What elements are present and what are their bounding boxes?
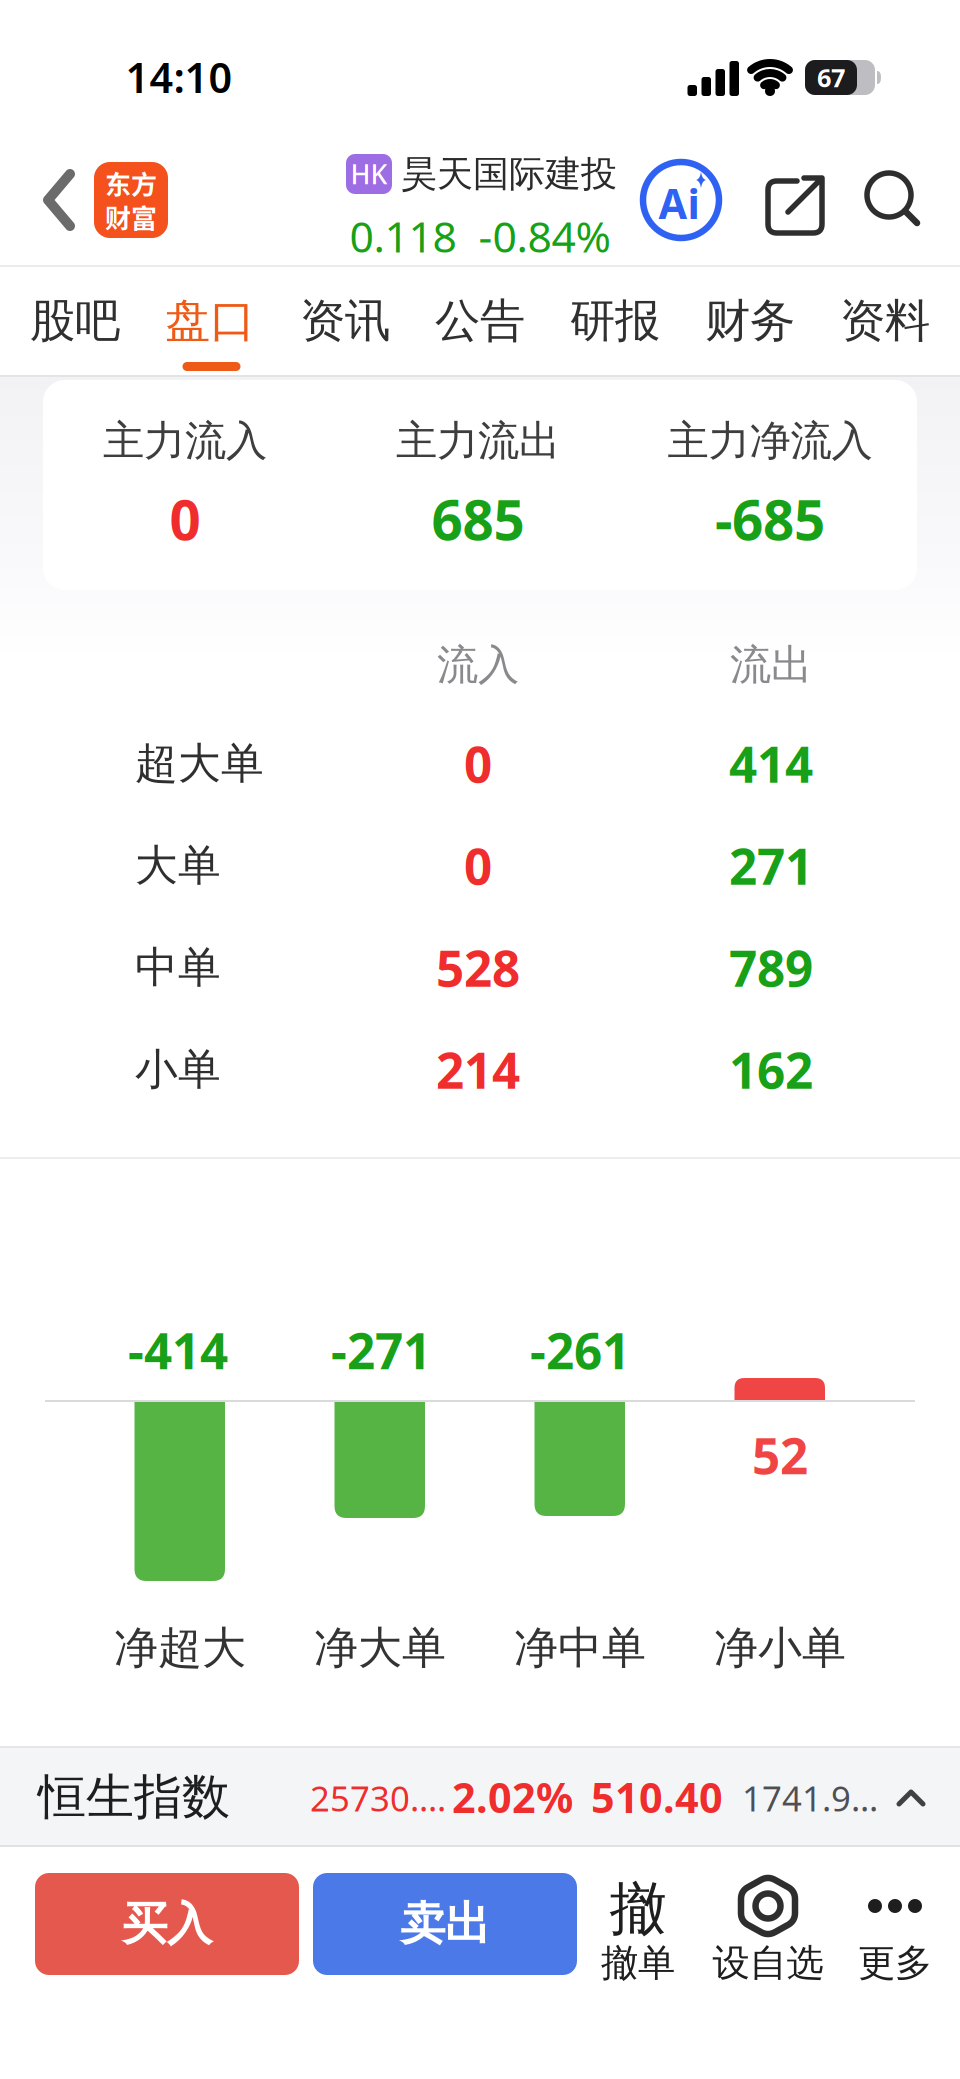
- staticText: HK: [350, 156, 387, 192]
- staticText: 研报: [570, 293, 660, 349]
- staticText: 0: [464, 833, 492, 898]
- staticText: 小单: [135, 1043, 221, 1096]
- staticText: 财务: [705, 293, 795, 349]
- staticText: 盘口: [165, 293, 255, 349]
- staticText: 528: [436, 935, 520, 1000]
- staticText: 设自选: [712, 1940, 823, 1986]
- staticText: 大单: [135, 839, 221, 892]
- staticText: 14:10: [125, 50, 232, 104]
- staticText: 685: [431, 483, 524, 555]
- staticText: 0: [464, 731, 492, 796]
- staticText: 昊天国际建投: [401, 152, 617, 196]
- staticText: 净超大: [114, 1621, 246, 1675]
- staticText: 789: [729, 935, 813, 1000]
- button[interactable]: 更多: [835, 1870, 955, 1998]
- staticText: -685: [715, 483, 825, 555]
- staticText: 510.40: [591, 1770, 723, 1824]
- button[interactable]: 盘口: [142, 268, 277, 374]
- staticText: 买入: [122, 1896, 212, 1952]
- staticText: 0: [169, 483, 200, 555]
- staticText: 超大单: [135, 737, 264, 790]
- button[interactable]: Ai: [639, 158, 723, 242]
- button[interactable]: 买入: [35, 1873, 299, 1975]
- button[interactable]: 设自选: [693, 1870, 843, 1998]
- staticText: 52: [752, 1422, 808, 1488]
- staticText: 净大单: [314, 1621, 446, 1675]
- staticText: 主力净流入: [667, 416, 872, 466]
- staticText: 公告: [435, 293, 525, 349]
- staticText: -271: [331, 1317, 431, 1383]
- staticText: -414: [128, 1317, 228, 1383]
- staticText: 恒生指数: [38, 1767, 230, 1826]
- staticText: 撤: [609, 1874, 666, 1944]
- staticText: 271: [729, 833, 813, 898]
- staticText: 中单: [135, 941, 221, 994]
- staticText: 净小单: [714, 1621, 846, 1675]
- staticText: 1741.9...: [742, 1775, 878, 1821]
- button[interactable]: 公告: [412, 268, 547, 374]
- staticText: 67: [817, 61, 845, 94]
- staticText: 卖出: [400, 1896, 490, 1952]
- staticText: 净中单: [514, 1621, 646, 1675]
- staticText: 2.02%: [452, 1770, 573, 1824]
- button[interactable]: 撤: [578, 1870, 698, 1998]
- staticText: 资讯: [300, 293, 390, 349]
- staticText: 主力流出: [396, 416, 560, 466]
- staticText: -261: [530, 1317, 630, 1383]
- staticText: 流入: [437, 640, 519, 690]
- button[interactable]: 恒生指数: [0, 1746, 960, 1847]
- button[interactable]: 财务: [682, 268, 817, 374]
- staticText: 0.118 -0.84%: [349, 208, 610, 264]
- staticText: 流出: [730, 640, 812, 690]
- staticText: Ai: [658, 176, 699, 230]
- staticText: 主力流入: [103, 416, 267, 466]
- button[interactable]: 股吧: [7, 268, 142, 374]
- button[interactable]: 资讯: [277, 268, 412, 374]
- button[interactable]: 研报: [547, 268, 682, 374]
- button[interactable]: Back: [31, 162, 87, 238]
- button[interactable]: Share: [759, 164, 835, 240]
- staticText: 股吧: [30, 293, 120, 349]
- button[interactable]: 资料: [817, 268, 952, 374]
- staticText: 更多: [858, 1940, 932, 1986]
- staticText: 资料: [840, 293, 930, 349]
- staticText: 162: [729, 1037, 813, 1102]
- staticText: 撤单: [601, 1940, 675, 1986]
- button[interactable]: 卖出: [313, 1873, 577, 1975]
- staticText: 414: [729, 731, 813, 796]
- staticText: 25730....: [310, 1775, 446, 1821]
- button[interactable]: 东方财富: [94, 162, 168, 238]
- button[interactable]: Search: [855, 161, 931, 237]
- staticText: 财富: [105, 198, 157, 236]
- staticText: 东方: [105, 164, 157, 202]
- staticText: 214: [436, 1037, 520, 1102]
